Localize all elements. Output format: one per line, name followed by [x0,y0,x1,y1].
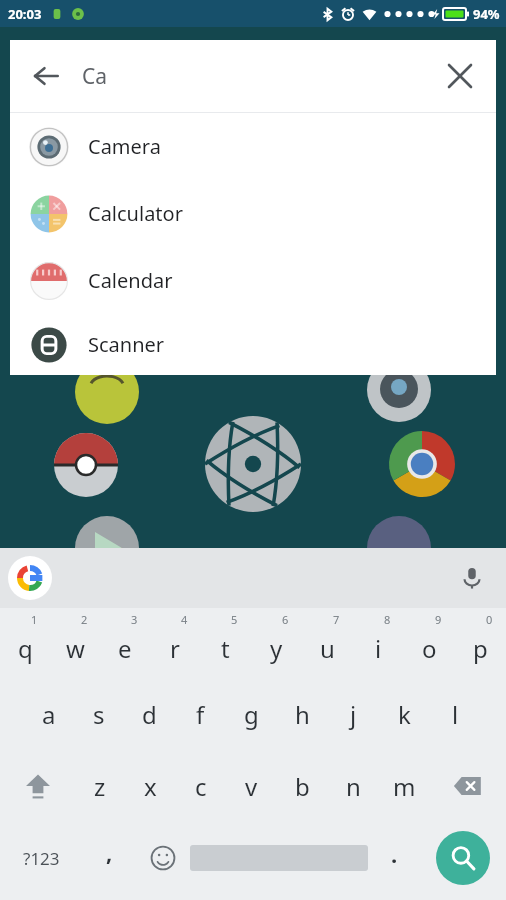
staticText: 20:03 [8,5,42,23]
button[interactable]: Camera [10,113,496,180]
button[interactable]: Voice input [452,558,492,598]
button[interactable]: Shift [0,750,75,822]
button[interactable]: g [226,679,277,750]
staticText: t [221,632,230,665]
button[interactable]: j [328,679,379,750]
button[interactable]: b [277,750,328,822]
button[interactable]: 9 [404,608,455,679]
staticText: k [398,698,411,731]
button[interactable]: a [24,679,74,750]
button[interactable]: h [277,679,328,750]
staticText: v [245,770,258,803]
staticText: o [422,632,437,665]
button[interactable]: m [379,750,430,822]
staticText: s [93,698,105,731]
button[interactable]: 3 [100,608,150,679]
staticText: p [473,632,488,665]
staticText: . [391,839,398,869]
staticText: y [270,632,283,665]
staticText: a [42,698,56,731]
button[interactable]: z [75,750,125,822]
staticText: Ca [82,62,108,91]
staticText: b [295,770,310,803]
button[interactable]: 0 [455,608,506,679]
button[interactable]: 6 [251,608,302,679]
button[interactable]: Search [436,831,490,885]
button[interactable]: Scanner [10,314,496,375]
staticText: Scanner [88,331,165,358]
staticText: j [350,698,357,731]
staticText: Camera [88,133,161,160]
staticText: 7 [333,612,340,627]
staticText: 1 [31,612,38,627]
button[interactable]: 5 [200,608,251,679]
staticText: c [195,770,207,803]
button[interactable]: ?123 [0,822,83,894]
staticText: h [295,698,310,731]
button[interactable]: k [379,679,430,750]
staticText: 9 [435,612,442,627]
staticText: d [142,698,157,731]
staticText: 6 [282,612,289,627]
button[interactable]: Calculator [10,180,496,247]
button[interactable]: Clear [424,40,496,112]
button[interactable]: 1 [0,608,50,679]
button[interactable]: Space [190,822,368,894]
staticText: Calendar [88,267,173,294]
button[interactable]: Back [10,40,82,112]
button[interactable]: 4 [150,608,200,679]
button[interactable]: , [83,822,135,894]
button[interactable]: Backspace [430,750,506,822]
staticText: 8 [384,612,391,627]
staticText: x [144,770,157,803]
staticText: i [375,632,382,665]
button[interactable]: s [74,679,124,750]
staticText: g [244,698,259,731]
staticText: r [170,632,180,665]
staticText: ?123 [23,847,60,870]
staticText: q [18,632,33,665]
staticText: m [393,770,416,803]
button[interactable]: . [368,822,420,894]
staticText: l [452,698,459,731]
button[interactable]: 2 [50,608,100,679]
staticText: 5 [231,612,238,627]
staticText: n [346,770,361,803]
button[interactable]: v [226,750,277,822]
button[interactable]: d [124,679,175,750]
button[interactable]: Calendar [10,247,496,314]
staticText: w [66,632,85,665]
button[interactable]: n [328,750,379,822]
button[interactable]: 7 [302,608,353,679]
button[interactable]: x [125,750,175,822]
button[interactable]: l [430,679,481,750]
button[interactable]: c [175,750,226,822]
staticText: z [94,770,106,803]
staticText: 94% [473,5,500,23]
staticText: f [196,698,205,731]
staticText: e [118,632,132,665]
button[interactable]: Emoji [135,822,190,894]
staticText: u [320,632,335,665]
staticText: 2 [81,612,88,627]
button[interactable]: Google [8,556,52,600]
button[interactable]: f [175,679,226,750]
staticText: 4 [181,612,188,627]
staticText: Calculator [88,200,183,227]
button[interactable]: 8 [353,608,404,679]
staticText: 0 [486,612,493,627]
staticText: 3 [131,612,138,627]
staticText: , [106,837,113,867]
